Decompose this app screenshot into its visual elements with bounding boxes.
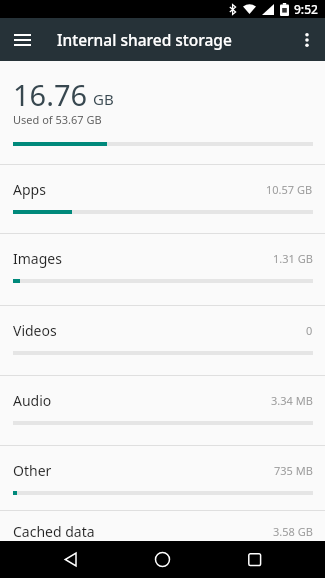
button[interactable] — [0, 376, 325, 445]
staticText: 735 MB — [274, 463, 313, 478]
staticText: Videos — [13, 321, 57, 340]
button[interactable] — [144, 541, 181, 578]
staticText: Used of 53.67 GB — [13, 112, 102, 127]
staticText: 0 — [306, 323, 313, 338]
button[interactable] — [52, 541, 89, 578]
staticText: Apps — [13, 180, 46, 199]
button[interactable] — [290, 23, 323, 56]
staticText: Audio — [13, 391, 52, 410]
button[interactable] — [0, 165, 325, 234]
staticText: Internal shared storage — [57, 29, 232, 50]
staticText: Other — [13, 461, 52, 480]
button[interactable] — [0, 234, 325, 303]
button[interactable] — [0, 511, 325, 578]
staticText: GB — [93, 89, 114, 109]
staticText: 10.57 GB — [266, 182, 313, 197]
staticText: 3.58 GB — [273, 524, 313, 539]
button[interactable] — [6, 23, 39, 56]
staticText: 3.34 MB — [271, 393, 313, 408]
staticText: 9:52 — [294, 1, 318, 17]
button[interactable] — [0, 446, 325, 515]
button[interactable] — [0, 306, 325, 375]
staticText: Images — [13, 249, 62, 268]
staticText: 1.31 GB — [273, 251, 313, 266]
button[interactable] — [236, 541, 273, 578]
staticText: Cached data — [13, 522, 95, 541]
staticText: 16.76 — [13, 75, 88, 114]
